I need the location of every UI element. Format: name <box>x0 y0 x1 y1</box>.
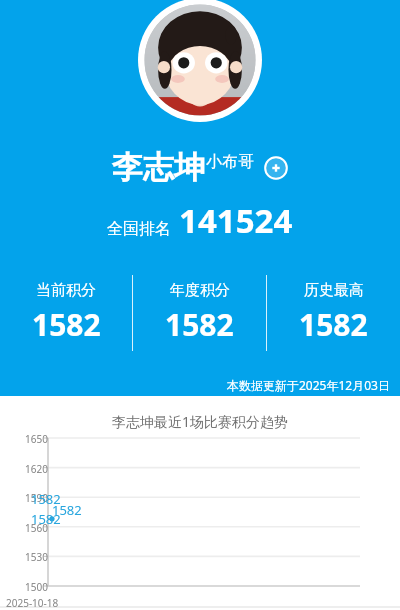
button[interactable]: Profile avatar <box>138 0 262 122</box>
staticText: 本数据更新于2025年12月03日 <box>227 377 390 393</box>
staticText: 1500 <box>14 580 48 594</box>
staticText: 全国排名 <box>107 219 171 239</box>
staticText: 1590 <box>14 491 48 505</box>
staticText: 1560 <box>14 521 48 535</box>
staticText: 1530 <box>14 550 48 564</box>
staticText: 2025-10-18 <box>6 596 59 610</box>
button[interactable]: 年度积分 <box>133 272 266 354</box>
staticText: 1582 <box>32 304 101 345</box>
staticText: 李志坤 <box>112 148 205 187</box>
staticText: 141524 <box>179 198 293 243</box>
staticText: 当前积分 <box>36 281 96 300</box>
staticText: 1620 <box>14 462 48 476</box>
staticText: 1582 <box>165 304 234 345</box>
staticText: 1582 <box>31 490 61 508</box>
staticText: 年度积分 <box>170 281 230 300</box>
staticText: 1582 <box>52 501 82 519</box>
button[interactable]: 当前积分 <box>0 272 132 354</box>
staticText: 1582 <box>299 304 368 345</box>
staticText: 李志坤最近1场比赛积分趋势 <box>112 412 289 431</box>
button[interactable]: Add friend <box>264 156 288 180</box>
staticText: 1582 <box>31 510 61 528</box>
staticText: 1650 <box>14 432 48 446</box>
button[interactable]: 历史最高 <box>267 272 400 354</box>
staticText: 小布哥 <box>206 152 254 172</box>
staticText: 历史最高 <box>304 281 364 300</box>
